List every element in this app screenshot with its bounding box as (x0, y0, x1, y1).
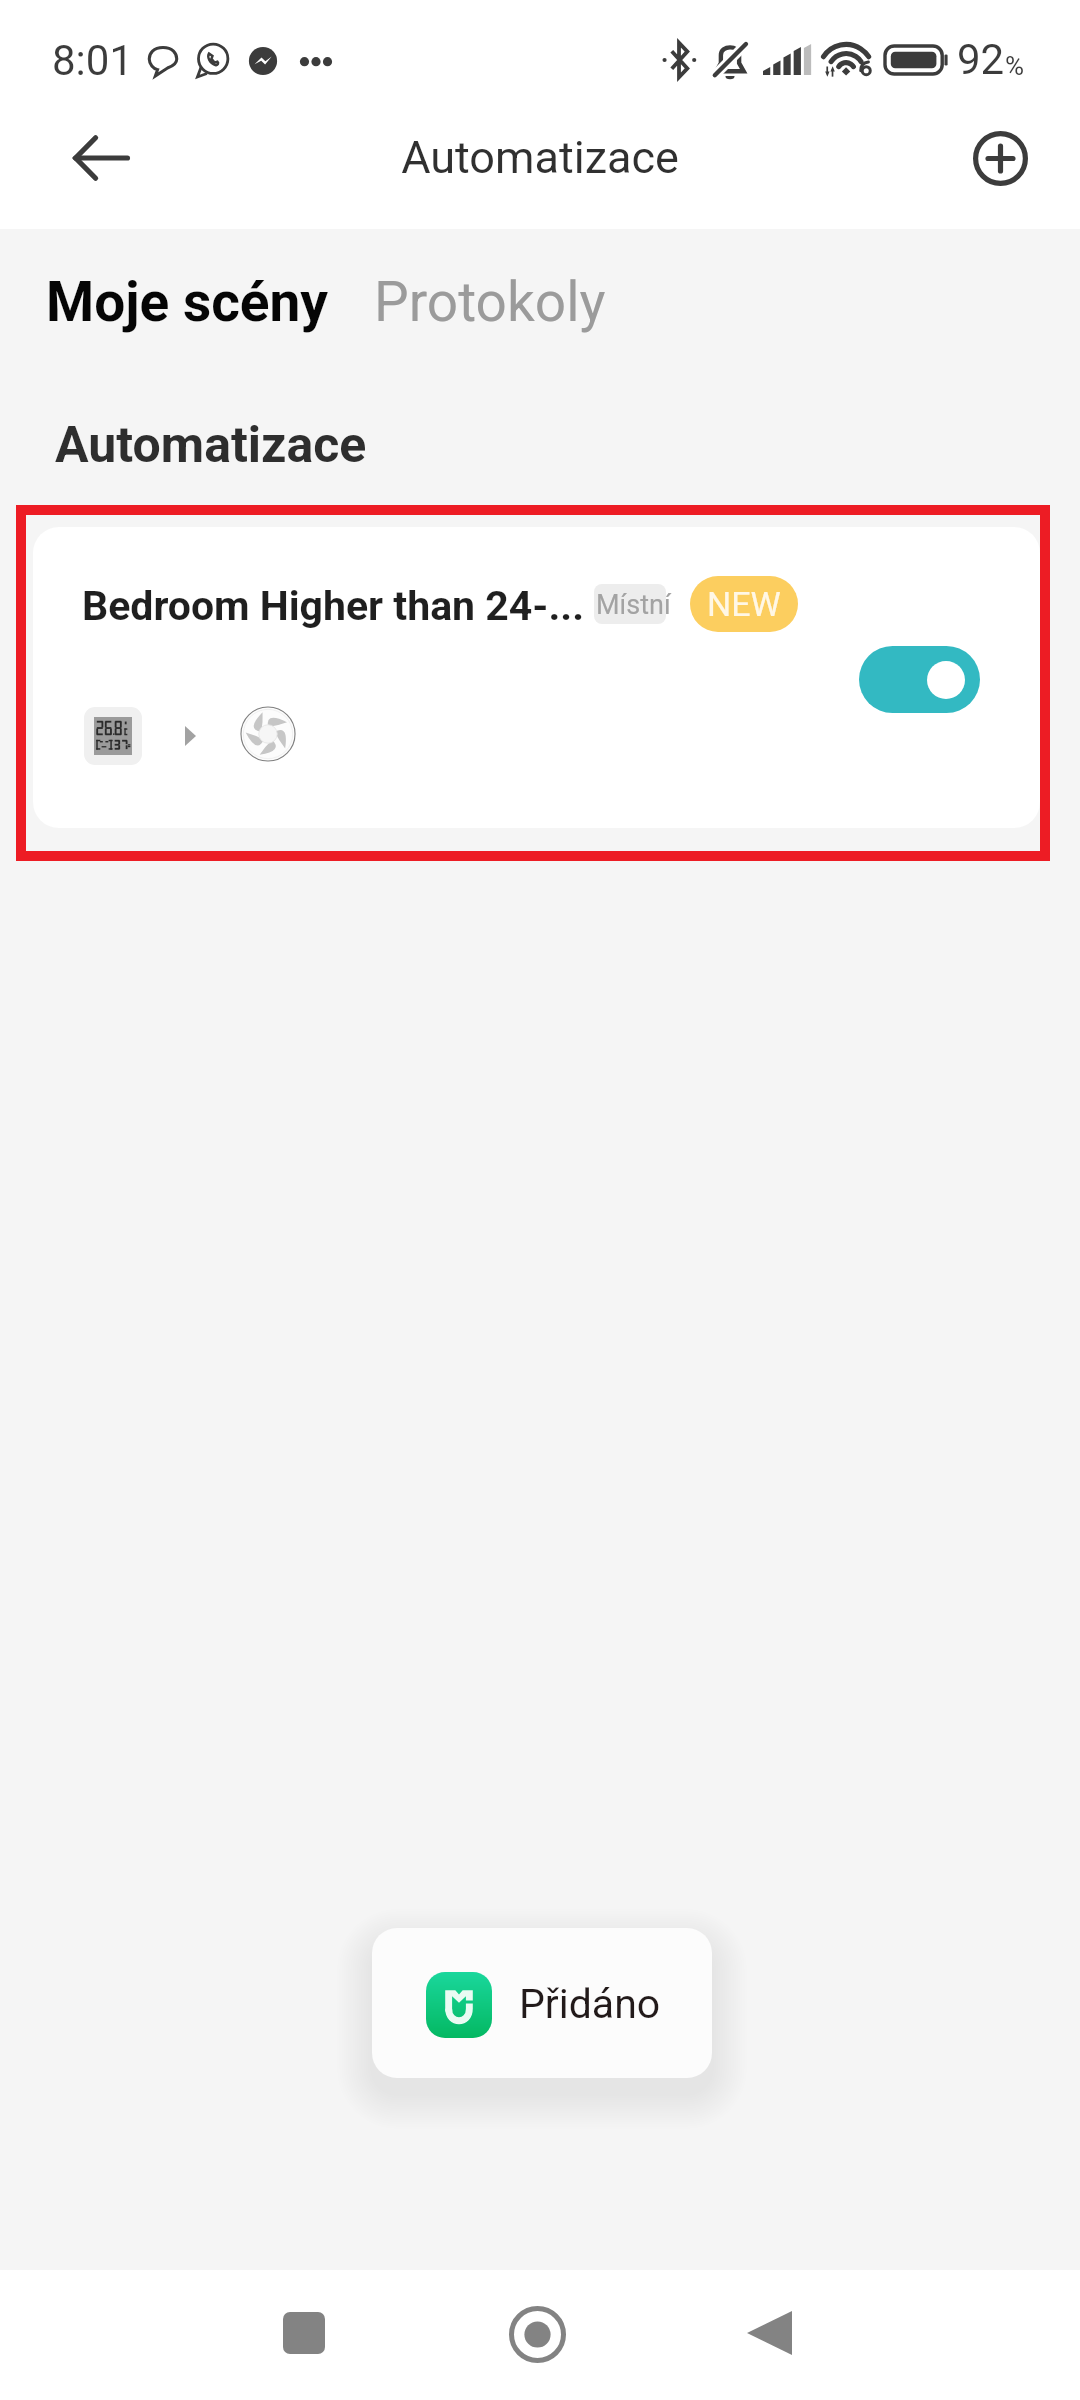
button[interactable]: Home (477, 2274, 597, 2394)
staticText: % (1005, 51, 1025, 81)
staticText: Moje scény (46, 270, 329, 334)
staticText: Automatizace (401, 131, 679, 184)
staticText: Bedroom Higher than 24-... (82, 582, 585, 630)
button[interactable]: Back (53, 110, 149, 206)
button[interactable]: Recent apps (244, 2273, 364, 2393)
button[interactable]: Bedroom Higher than 24-... (33, 527, 1040, 828)
staticText: NEW (707, 584, 781, 624)
staticText: Protokoly (374, 270, 606, 334)
staticText: 92 (957, 35, 1005, 84)
button[interactable]: Enable automation (859, 646, 980, 713)
button[interactable]: Back (709, 2273, 829, 2393)
staticText: Místní (596, 589, 671, 621)
staticText: Přidáno (519, 1980, 661, 2028)
staticText: 8:01 (52, 36, 133, 85)
button[interactable]: Add automation (952, 110, 1048, 206)
button[interactable]: Protokoly (364, 260, 616, 344)
staticText: Automatizace (55, 416, 367, 475)
button[interactable]: Moje scény (36, 260, 339, 344)
